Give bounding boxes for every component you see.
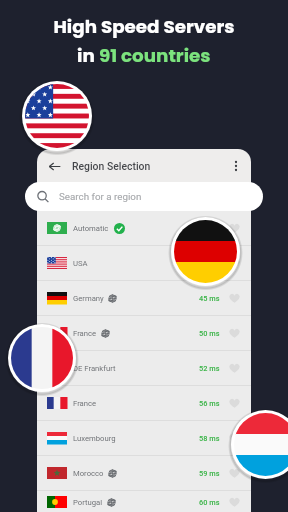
button[interactable]: Portugal (37, 491, 251, 512)
button[interactable]: Add to favourites (227, 221, 241, 235)
staticText: 91 countries (99, 43, 211, 69)
button[interactable]: Add to favourites (227, 291, 241, 305)
staticText: 45 ms (199, 294, 220, 303)
staticText: 56 ms (199, 399, 220, 408)
button[interactable]: Add to favourites (227, 495, 241, 509)
staticText: 58 ms (199, 434, 220, 443)
button[interactable]: Search for a region (25, 182, 263, 211)
staticText: France (73, 329, 97, 338)
staticText: Luxembourg (73, 434, 116, 443)
button[interactable]: Back (44, 156, 64, 176)
staticText: Search for a region (59, 191, 142, 202)
button[interactable]: Add to favourites (227, 431, 241, 445)
button[interactable]: Add to favourites (227, 256, 241, 270)
button[interactable]: Automatic (37, 211, 251, 245)
staticText: USA (73, 259, 88, 268)
staticText: DE Frankfurt (73, 364, 116, 373)
staticText: 50 ms (199, 329, 220, 338)
button[interactable]: Add to favourites (227, 326, 241, 340)
staticText: 60 ms (199, 498, 220, 507)
staticText: France (73, 399, 97, 408)
button[interactable]: Morocco (37, 456, 251, 490)
staticText: Germany (73, 294, 104, 303)
button[interactable]: Add to favourites (227, 466, 241, 480)
button[interactable]: France (37, 386, 251, 420)
staticText: Portugal (73, 498, 103, 507)
button[interactable]: France (37, 316, 251, 350)
staticText: Region Selection (72, 160, 151, 172)
staticText: Morocco (73, 469, 104, 478)
button[interactable]: DE Frankfurt (37, 351, 251, 385)
staticText: 52 ms (199, 364, 220, 373)
button[interactable]: Luxembourg (37, 421, 251, 455)
staticText: in (77, 43, 99, 69)
button[interactable]: Add to favourites (227, 361, 241, 375)
staticText: High Speed Servers (53, 14, 235, 40)
staticText: 59 ms (199, 469, 220, 478)
button[interactable]: More options (227, 157, 245, 175)
button[interactable]: Germany (37, 281, 251, 315)
button[interactable]: Add to favourites (227, 396, 241, 410)
staticText: Automatic (73, 224, 109, 233)
button[interactable]: USA (37, 246, 251, 280)
